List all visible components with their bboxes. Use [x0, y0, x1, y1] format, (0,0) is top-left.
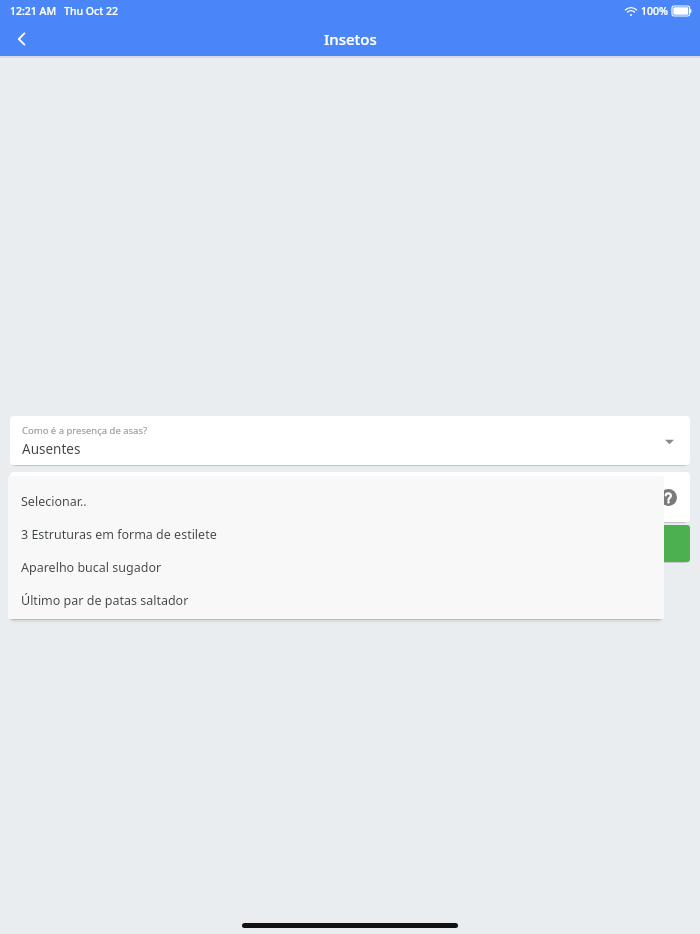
staticText: 100% — [641, 4, 668, 18]
button[interactable]: Help — [655, 484, 681, 510]
button[interactable]: Back — [0, 22, 44, 56]
staticText: Thu Oct 22 — [64, 4, 118, 18]
staticText: Aparelho bucal sugador — [21, 559, 162, 576]
staticText: Insetos — [324, 29, 377, 49]
staticText: Ausentes — [22, 440, 81, 458]
button[interactable]: Último par de patas saltador — [8, 584, 664, 617]
staticText: Como é a presença de asas? — [22, 424, 148, 437]
button[interactable]: Confirm — [655, 525, 690, 562]
button[interactable]: Selecionar.. — [8, 485, 664, 518]
staticText: Selecionar.. — [21, 493, 87, 510]
staticText: 12:21 AM — [10, 4, 57, 18]
button[interactable]: Como é a presença de asas? — [10, 416, 690, 465]
button[interactable]: Aparelho bucal sugador — [8, 551, 664, 584]
button[interactable]: 3 Estruturas em forma de estilete — [8, 518, 664, 551]
staticText: 3 Estruturas em forma de estilete — [21, 526, 217, 543]
staticText: Último par de patas saltador — [21, 592, 189, 609]
